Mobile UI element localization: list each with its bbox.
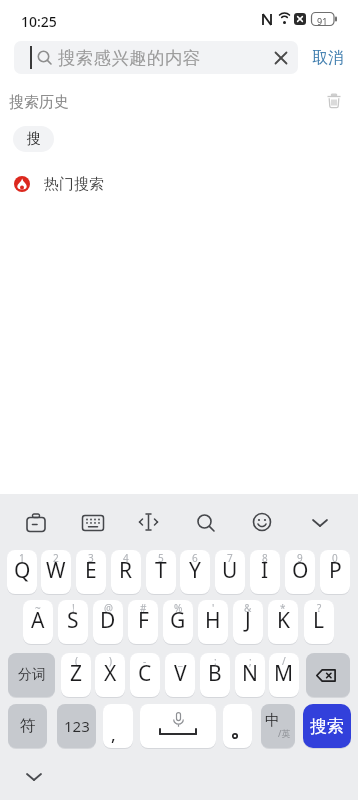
staticText: , bbox=[111, 723, 116, 746]
staticText: P bbox=[329, 556, 342, 585]
button[interactable]: 热门搜索 bbox=[44, 172, 104, 196]
staticText: Q bbox=[14, 556, 31, 585]
button[interactable]: 123 bbox=[57, 704, 96, 748]
button[interactable]: # bbox=[128, 600, 158, 644]
staticText: @ bbox=[104, 601, 113, 615]
button[interactable]: 4 bbox=[111, 550, 141, 594]
button[interactable] bbox=[306, 653, 350, 697]
button[interactable]: & bbox=[233, 600, 263, 644]
button[interactable]: 符 bbox=[8, 704, 47, 748]
staticText: D bbox=[100, 606, 116, 635]
staticText: B bbox=[208, 659, 222, 688]
staticText: 6 bbox=[192, 551, 198, 565]
staticText: ? bbox=[317, 601, 322, 615]
staticText: ) bbox=[109, 654, 112, 668]
staticText: N bbox=[242, 659, 258, 688]
button[interactable]: @ bbox=[93, 600, 123, 644]
staticText: 符 bbox=[20, 716, 36, 736]
staticText: F bbox=[138, 606, 149, 635]
staticText: ' bbox=[212, 601, 215, 615]
staticText: 取消 bbox=[312, 48, 344, 68]
staticText: 2 bbox=[53, 551, 59, 565]
button[interactable] bbox=[247, 506, 279, 538]
button[interactable]: 1 bbox=[7, 550, 37, 594]
button[interactable]: 搜索 bbox=[303, 704, 351, 748]
button[interactable]: 0 bbox=[320, 550, 350, 594]
staticText: ; bbox=[249, 654, 252, 668]
staticText: E bbox=[85, 556, 97, 585]
staticText: 分词 bbox=[18, 666, 46, 684]
button[interactable]: 9 bbox=[285, 550, 315, 594]
button[interactable]: ) bbox=[95, 653, 125, 697]
staticText: & bbox=[244, 601, 252, 615]
button[interactable]: % bbox=[163, 600, 193, 644]
button[interactable]: : bbox=[200, 653, 230, 697]
button[interactable] bbox=[20, 763, 48, 791]
button[interactable]: ; bbox=[235, 653, 265, 697]
staticText: 中 bbox=[265, 711, 280, 730]
staticText: _ bbox=[178, 654, 183, 668]
staticText: / bbox=[282, 654, 286, 668]
button[interactable]: ' bbox=[198, 600, 228, 644]
button[interactable] bbox=[140, 704, 216, 748]
staticText: W bbox=[46, 556, 66, 585]
staticText: I bbox=[261, 556, 269, 585]
staticText: 8 bbox=[262, 551, 268, 565]
staticText: % bbox=[174, 601, 183, 615]
button[interactable]: ( bbox=[61, 653, 91, 697]
staticText: H bbox=[205, 606, 221, 635]
button[interactable]: 8 bbox=[250, 550, 280, 594]
staticText: 搜索 bbox=[310, 716, 344, 737]
staticText: G bbox=[170, 606, 186, 635]
staticText: : bbox=[214, 654, 217, 668]
button[interactable]: 3 bbox=[76, 550, 106, 594]
staticText: 10:25 bbox=[21, 12, 57, 31]
staticText: Y bbox=[189, 556, 201, 585]
button[interactable]: * bbox=[268, 600, 298, 644]
button[interactable]: ~ bbox=[23, 600, 53, 644]
button[interactable]: ? bbox=[304, 600, 334, 644]
button[interactable]: 搜索感兴趣的内容 bbox=[14, 41, 298, 74]
staticText: T bbox=[155, 556, 167, 585]
staticText: R bbox=[119, 556, 133, 585]
staticText: O bbox=[292, 556, 309, 585]
button[interactable]: / bbox=[269, 653, 299, 697]
button[interactable]: , bbox=[103, 704, 133, 748]
staticText: 4 bbox=[123, 551, 129, 565]
staticText: ( bbox=[75, 654, 78, 668]
button[interactable]: 分词 bbox=[8, 653, 55, 697]
button[interactable]: _ bbox=[165, 653, 195, 697]
button[interactable]: 5 bbox=[146, 550, 176, 594]
staticText: A bbox=[31, 606, 45, 635]
button[interactable] bbox=[20, 506, 52, 538]
staticText: X bbox=[104, 659, 117, 688]
staticText: 7 bbox=[227, 551, 233, 565]
staticText: 热门搜索 bbox=[44, 175, 104, 194]
button[interactable]: - bbox=[130, 653, 160, 697]
button[interactable]: 中 bbox=[261, 704, 295, 748]
button[interactable]: 搜 bbox=[13, 126, 54, 152]
button[interactable] bbox=[76, 506, 108, 538]
button[interactable] bbox=[223, 704, 252, 748]
staticText: 1 bbox=[19, 551, 25, 565]
staticText: U bbox=[222, 556, 238, 585]
button[interactable]: 7 bbox=[215, 550, 245, 594]
button[interactable] bbox=[190, 506, 222, 538]
staticText: 91 bbox=[317, 15, 328, 27]
button[interactable]: 6 bbox=[180, 550, 210, 594]
button[interactable]: 2 bbox=[41, 550, 71, 594]
button[interactable] bbox=[274, 51, 288, 65]
button[interactable] bbox=[132, 506, 164, 538]
button[interactable] bbox=[304, 506, 336, 538]
staticText: * bbox=[280, 601, 286, 615]
staticText: 5 bbox=[158, 551, 164, 565]
staticText: L bbox=[313, 606, 325, 635]
staticText: /英 bbox=[278, 727, 291, 739]
button[interactable]: 取消 bbox=[305, 41, 351, 74]
staticText: - bbox=[143, 654, 147, 668]
button[interactable] bbox=[326, 93, 342, 109]
button[interactable]: ! bbox=[58, 600, 88, 644]
staticText: 0 bbox=[332, 551, 338, 565]
staticText: K bbox=[277, 606, 290, 635]
staticText: 9 bbox=[297, 551, 303, 565]
